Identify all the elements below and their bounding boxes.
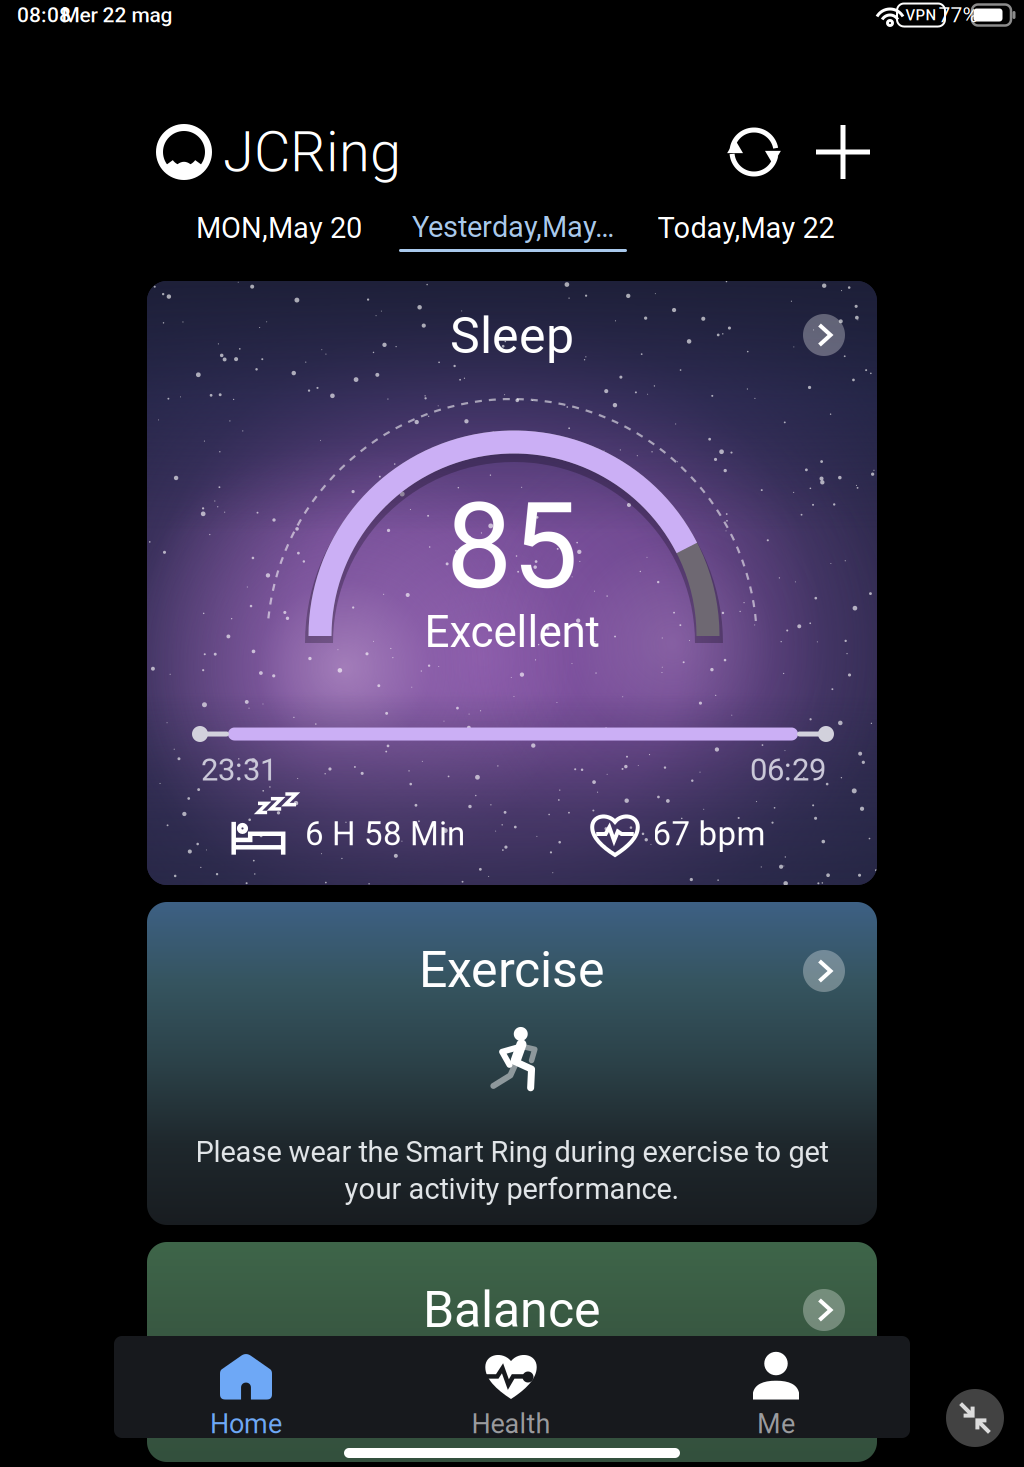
button[interactable]: Health <box>379 1336 644 1438</box>
button[interactable]: Yesterday,May… <box>399 210 627 252</box>
staticText: Exercise <box>419 941 605 999</box>
staticText: Mer 22 mag <box>61 3 172 27</box>
button[interactable]: Me <box>644 1336 909 1438</box>
staticText: 06:29 <box>750 752 826 788</box>
staticText: JCRing <box>223 119 401 185</box>
staticText: Home <box>210 1408 282 1440</box>
button[interactable]: Today,May 22 <box>657 205 834 251</box>
button[interactable]: MON,May 20 <box>196 205 362 251</box>
staticText: your activity performance. <box>344 1172 679 1206</box>
button[interactable]: Collapse <box>946 1389 1004 1447</box>
staticText: Today,May 22 <box>657 211 834 245</box>
staticText: 08:08 <box>17 3 71 27</box>
staticText: 6 H 58 Min <box>305 815 465 853</box>
staticText: 77% <box>938 3 977 27</box>
staticText: Yesterday,May… <box>412 210 614 244</box>
staticText: MON,May 20 <box>196 211 362 245</box>
button[interactable]: Home <box>114 1336 379 1438</box>
staticText: Balance <box>423 1281 601 1339</box>
staticText: VPN <box>905 6 936 24</box>
staticText: 67 bpm <box>652 815 765 853</box>
staticText: Me <box>757 1408 795 1440</box>
button[interactable]: Balance details <box>803 1289 845 1331</box>
staticText: Excellent <box>424 606 599 658</box>
staticText: Sleep <box>450 307 574 365</box>
button[interactable]: Add device <box>816 125 870 179</box>
staticText: 85 <box>446 478 578 616</box>
button[interactable]: Sleep details <box>803 314 845 356</box>
staticText: Please wear the Smart Ring during exerci… <box>195 1135 828 1169</box>
staticText: 23:31 <box>201 752 277 788</box>
staticText: Health <box>471 1408 550 1440</box>
button[interactable]: Sync <box>729 127 779 177</box>
button[interactable]: Exercise details <box>803 950 845 992</box>
